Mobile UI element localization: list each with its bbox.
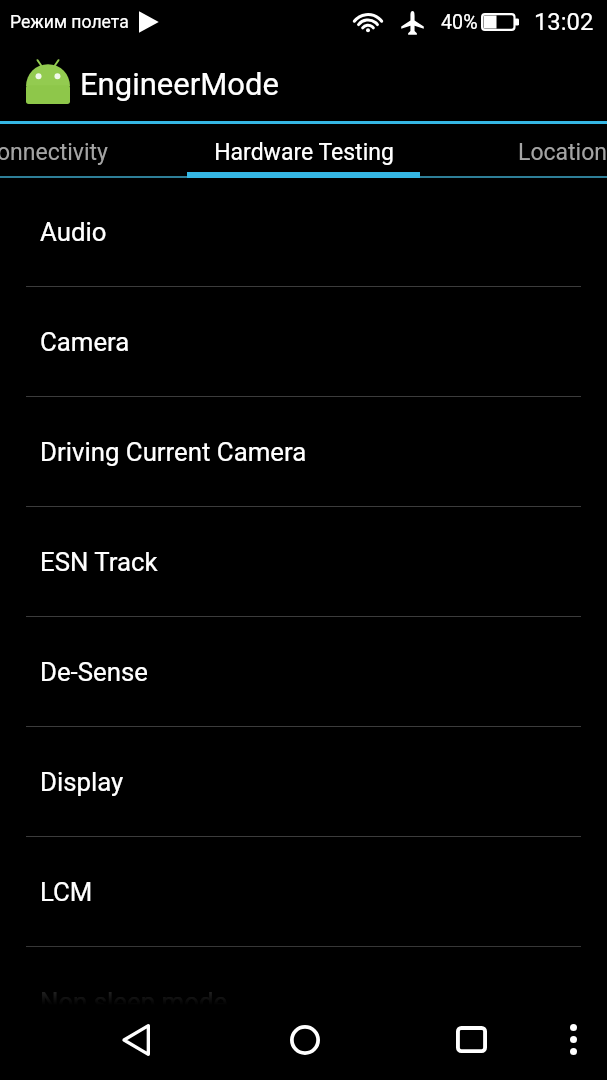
button[interactable]: Recent apps [431, 1005, 511, 1080]
staticText: Camera [40, 327, 130, 357]
staticText: Connectivity [0, 139, 108, 166]
staticText: ESN Track [40, 547, 158, 577]
button[interactable]: Home [265, 1005, 345, 1080]
staticText: Location [518, 139, 607, 166]
button[interactable]: Driving Current Camera [0, 397, 607, 506]
button[interactable]: Audio [0, 178, 607, 286]
button[interactable]: ESN Track [0, 507, 607, 616]
button[interactable]: Display [0, 727, 607, 836]
button[interactable]: Location [433, 124, 607, 178]
staticText: Audio [40, 217, 107, 247]
button[interactable]: Camera [0, 287, 607, 396]
staticText: LCM [40, 877, 93, 907]
staticText: Hardware Testing [214, 139, 394, 166]
button[interactable]: LCM [0, 837, 607, 946]
staticText: De-Sense [40, 657, 148, 687]
button[interactable]: Connectivity [0, 124, 174, 178]
staticText: Non sleep mode [40, 987, 228, 1017]
staticText: Display [40, 767, 124, 797]
button[interactable]: Back [97, 1005, 177, 1080]
staticText: 40% [441, 11, 478, 34]
staticText: Driving Current Camera [40, 437, 307, 467]
button[interactable]: More options [544, 1005, 604, 1080]
button[interactable]: De-Sense [0, 617, 607, 726]
button[interactable]: Hardware Testing [174, 124, 433, 178]
button[interactable]: Non sleep mode [0, 947, 607, 1056]
staticText: EngineerMode [80, 66, 279, 102]
staticText: Режим полета [10, 12, 129, 33]
staticText: 13:02 [534, 8, 594, 36]
